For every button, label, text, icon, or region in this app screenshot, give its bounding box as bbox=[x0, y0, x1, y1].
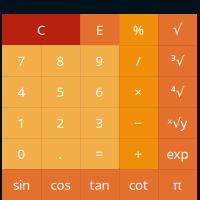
staticText: exp bbox=[166, 145, 188, 162]
button[interactable]: Decimal point bbox=[41, 138, 80, 169]
button[interactable]: 8 bbox=[41, 45, 80, 76]
button[interactable]: Fourth root bbox=[158, 76, 197, 107]
button[interactable]: x root of y bbox=[158, 107, 197, 138]
button[interactable]: Pi bbox=[158, 169, 197, 200]
button[interactable]: Divide bbox=[119, 45, 158, 76]
staticText: 9 bbox=[95, 52, 103, 69]
staticText: E bbox=[96, 21, 103, 38]
staticText: ³√ bbox=[171, 52, 184, 69]
staticText: √ bbox=[173, 21, 182, 38]
button[interactable]: 7 bbox=[2, 45, 41, 76]
button[interactable]: Percent bbox=[119, 14, 158, 45]
button[interactable]: 6 bbox=[80, 76, 119, 107]
button[interactable]: 1 bbox=[2, 107, 41, 138]
staticText: 4 bbox=[17, 83, 25, 100]
staticText: ⁴√ bbox=[171, 83, 184, 100]
staticText: − bbox=[134, 114, 142, 131]
staticText: ˣ√y bbox=[167, 114, 187, 131]
button[interactable]: Plus bbox=[119, 138, 158, 169]
button[interactable]: Equals bbox=[80, 138, 119, 169]
button[interactable]: Clear bbox=[2, 14, 80, 45]
staticText: cot bbox=[129, 176, 148, 193]
staticText: tan bbox=[89, 176, 109, 193]
button[interactable]: 3 bbox=[80, 107, 119, 138]
staticText: 8 bbox=[56, 52, 64, 69]
staticText: cos bbox=[50, 176, 70, 193]
button[interactable]: 5 bbox=[41, 76, 80, 107]
staticText: 1 bbox=[17, 114, 25, 131]
button[interactable]: 2 bbox=[41, 107, 80, 138]
button[interactable]: Square root bbox=[158, 14, 197, 45]
staticText: 0 bbox=[17, 145, 25, 162]
button[interactable]: 0 bbox=[2, 138, 41, 169]
button[interactable]: 4 bbox=[2, 76, 41, 107]
staticText: × bbox=[134, 83, 142, 100]
staticText: 2 bbox=[56, 114, 64, 131]
staticText: sin bbox=[13, 176, 30, 193]
button[interactable]: cot bbox=[119, 169, 158, 200]
button[interactable]: Minus bbox=[119, 107, 158, 138]
staticText: 5 bbox=[56, 83, 64, 100]
staticText: π bbox=[173, 176, 182, 193]
button[interactable]: Exponential bbox=[158, 138, 197, 169]
staticText: / bbox=[136, 52, 141, 69]
button[interactable]: sin bbox=[2, 169, 41, 200]
staticText: = bbox=[95, 145, 103, 162]
staticText: + bbox=[134, 145, 142, 162]
staticText: % bbox=[133, 21, 144, 38]
button[interactable]: 9 bbox=[80, 45, 119, 76]
button[interactable]: Cube root bbox=[158, 45, 197, 76]
button[interactable]: tan bbox=[80, 169, 119, 200]
staticText: C bbox=[37, 21, 45, 38]
staticText: . bbox=[58, 145, 62, 162]
button[interactable]: cos bbox=[41, 169, 80, 200]
staticText: 7 bbox=[17, 52, 25, 69]
staticText: 3 bbox=[95, 114, 103, 131]
staticText: 6 bbox=[95, 83, 103, 100]
button[interactable]: Exponent bbox=[80, 14, 119, 45]
button[interactable]: Multiply bbox=[119, 76, 158, 107]
